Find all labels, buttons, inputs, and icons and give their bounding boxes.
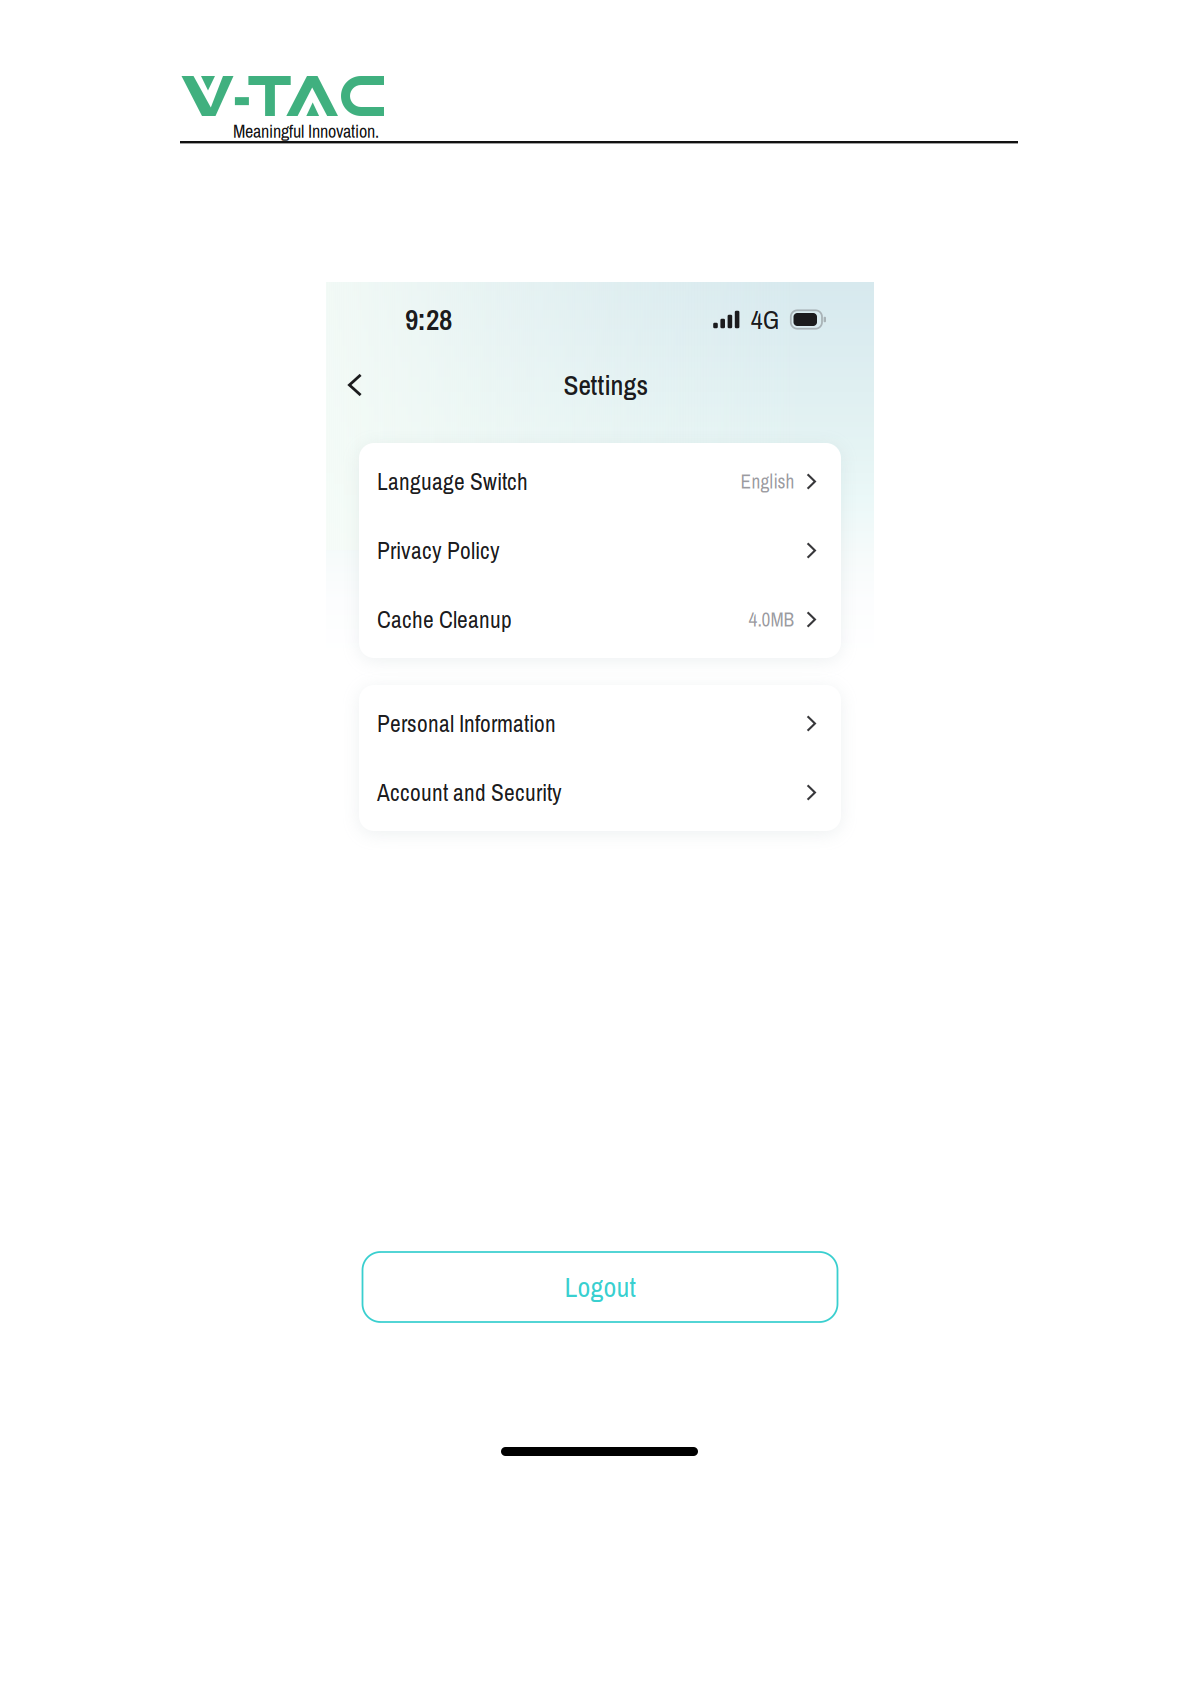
staticText: English [740, 468, 794, 494]
button[interactable]: Privacy Policy [359, 516, 841, 585]
button[interactable]: Personal Information [359, 689, 841, 758]
staticText: 4.0MB [748, 606, 794, 632]
staticText: Cache Cleanup [377, 604, 512, 635]
staticText: 4G [751, 302, 780, 337]
button[interactable]: Cache Cleanup [359, 585, 841, 654]
button[interactable]: Language Switch [359, 447, 841, 516]
staticText: 9:28 [405, 300, 452, 339]
button[interactable]: Back [331, 361, 379, 409]
staticText: Language Switch [377, 466, 528, 497]
button[interactable]: Logout [362, 1252, 837, 1322]
staticText: Privacy Policy [377, 535, 500, 566]
staticText: Logout [564, 1268, 635, 1306]
staticText: Settings [563, 367, 648, 403]
staticText: Meaningful Innovation. [233, 119, 379, 143]
staticText: Personal Information [377, 708, 556, 739]
staticText: Account and Security [377, 777, 562, 808]
button[interactable]: Account and Security [359, 758, 841, 827]
